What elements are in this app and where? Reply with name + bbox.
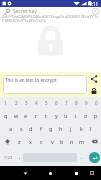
staticText: 9: [85, 100, 88, 106]
staticText: g: [49, 125, 53, 133]
staticText: 8: [75, 100, 78, 106]
button[interactable]: 4: [31, 97, 41, 109]
staticText: h: [59, 125, 63, 133]
staticText: 5: [45, 100, 48, 106]
button[interactable]: Shift: [0, 135, 14, 148]
staticText: 4:11: [89, 1, 99, 7]
button[interactable]: j: [66, 122, 76, 135]
staticText: 2: [15, 100, 18, 106]
button[interactable]: Home: [43, 166, 57, 180]
staticText: t: [45, 112, 48, 120]
button[interactable]: 0: [91, 97, 101, 109]
button[interactable]: l: [86, 122, 96, 135]
staticText: Secret key: [13, 8, 37, 15]
staticText: p: [94, 112, 98, 120]
button[interactable]: i: [71, 109, 81, 122]
staticText: 7: [65, 100, 68, 106]
button[interactable]: ,: [16, 148, 23, 166]
button[interactable]: k: [76, 122, 86, 135]
staticText: ,: [19, 154, 21, 161]
button[interactable]: x: [25, 135, 36, 148]
button[interactable]: m: [77, 135, 87, 148]
staticText: i: [75, 112, 77, 120]
staticText: l: [90, 125, 92, 133]
button[interactable]: y: [51, 109, 61, 122]
button[interactable]: 3: [21, 97, 31, 109]
button[interactable]: p: [91, 109, 101, 122]
staticText: j: [70, 125, 72, 133]
staticText: .: [81, 154, 83, 161]
button[interactable]: This is an text to encrypt: [3, 75, 87, 94]
staticText: v: [51, 138, 54, 146]
staticText: m: [79, 138, 85, 146]
staticText: ?123: [4, 155, 13, 160]
button[interactable]: w: [11, 109, 21, 122]
staticText: f: [40, 125, 42, 133]
staticText: z: [18, 138, 21, 146]
staticText: 1: [4, 100, 7, 106]
staticText: 3: [25, 100, 28, 106]
button[interactable]: 5: [41, 97, 51, 109]
button[interactable]: u: [61, 109, 71, 122]
button[interactable]: s: [16, 122, 26, 135]
staticText: y: [55, 112, 58, 120]
button[interactable]: a: [5, 122, 16, 135]
button[interactable]: f: [36, 122, 46, 135]
button[interactable]: r: [31, 109, 41, 122]
staticText: n: [70, 138, 74, 146]
button[interactable]: z: [14, 135, 25, 148]
button[interactable]: b: [57, 135, 67, 148]
button[interactable]: Back: [18, 166, 32, 180]
button[interactable]: o: [81, 109, 91, 122]
staticText: a: [9, 125, 13, 133]
staticText: w: [14, 112, 19, 120]
staticText: 6: [55, 100, 58, 106]
button[interactable]: Share: [88, 73, 100, 85]
button[interactable]: d: [26, 122, 36, 135]
button[interactable]: Help: [90, 7, 100, 16]
staticText: This is an text to encrypt: [5, 77, 57, 83]
staticText: CMKU0VuYY+2Fn1aZq: [2, 18, 99, 24]
button[interactable]: 2: [11, 97, 21, 109]
button[interactable]: 1: [0, 97, 11, 109]
staticText: 4: [35, 100, 38, 106]
button[interactable]: h: [56, 122, 66, 135]
staticText: 0: [95, 100, 98, 106]
button[interactable]: v: [47, 135, 57, 148]
button[interactable]: Enter: [87, 148, 101, 166]
staticText: u: [64, 112, 68, 120]
button[interactable]: 8: [71, 97, 81, 109]
staticText: c: [40, 138, 43, 146]
button[interactable]: Recents: [69, 166, 83, 180]
staticText: q: [4, 112, 8, 120]
staticText: ?: [94, 9, 96, 14]
button[interactable]: 9: [81, 97, 91, 109]
button[interactable]: t: [41, 109, 51, 122]
button[interactable]: 7: [61, 97, 71, 109]
button[interactable]: 6: [51, 97, 61, 109]
button[interactable]: e: [21, 109, 31, 122]
button[interactable]: q: [0, 109, 11, 122]
staticText: d: [29, 125, 33, 133]
staticText: r: [35, 112, 38, 120]
button[interactable]: Switch keyboard: [85, 166, 99, 180]
staticText: o: [84, 112, 88, 120]
staticText: x: [29, 138, 32, 146]
button[interactable]: g: [46, 122, 56, 135]
button[interactable]: ?123: [0, 148, 16, 166]
button[interactable]: c: [36, 135, 47, 148]
staticText: s: [20, 125, 23, 133]
staticText: 2a1PDxtQM4PkD8kuKV7XcqpUu/0CMKU0VuYY7zqQ…: [2, 14, 99, 20]
staticText: k: [80, 125, 83, 133]
staticText: e: [24, 112, 28, 120]
button[interactable]: .: [77, 148, 87, 166]
button[interactable]: Encrypt: [88, 85, 100, 97]
button[interactable]: n: [67, 135, 77, 148]
staticText: b: [60, 138, 64, 146]
button[interactable]: Backspace: [87, 135, 101, 148]
